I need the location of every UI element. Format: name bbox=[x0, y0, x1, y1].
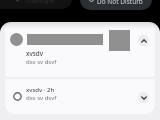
button[interactable]: Expand bbox=[138, 92, 149, 103]
staticText: dsv sv dsvf bbox=[26, 94, 57, 102]
staticText: xvsdv · 2h bbox=[26, 86, 55, 94]
staticText: Do Not Disturb bbox=[97, 0, 143, 6]
staticText: Flashlight bbox=[27, 0, 55, 5]
button[interactable]: Do Not Disturb bbox=[80, 0, 152, 10]
staticText: dsv sv dsvf bbox=[26, 58, 57, 66]
button[interactable]: Flashlight bbox=[0, 0, 72, 9]
staticText: xvsdv bbox=[26, 49, 44, 58]
button[interactable]: xvsdv · 2h bbox=[5, 79, 155, 114]
button[interactable]: Collapse bbox=[5, 22, 155, 77]
button[interactable]: Collapse bbox=[138, 35, 149, 46]
